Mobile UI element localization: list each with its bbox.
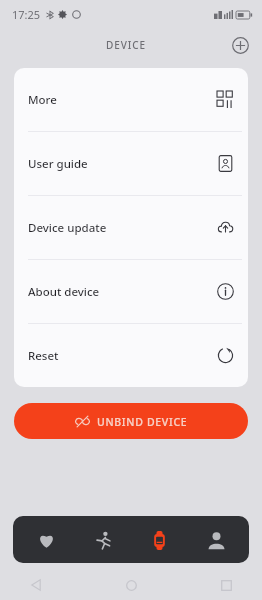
staticText: Reset bbox=[28, 348, 59, 364]
button[interactable]: Health bbox=[23, 517, 69, 563]
button[interactable]: UNBIND DEVICE bbox=[14, 403, 248, 439]
staticText: More bbox=[28, 92, 57, 108]
button[interactable]: About device bbox=[14, 260, 248, 323]
staticText: About device bbox=[28, 284, 100, 300]
button[interactable]: Recents bbox=[212, 571, 240, 599]
staticText: 17:25 bbox=[12, 7, 41, 22]
button[interactable]: Device bbox=[136, 517, 182, 563]
staticText: UNBIND DEVICE bbox=[97, 415, 188, 429]
staticText: Device update bbox=[28, 220, 107, 236]
button[interactable]: Add device bbox=[227, 32, 253, 58]
button[interactable]: Activity bbox=[80, 517, 126, 563]
staticText: User guide bbox=[28, 156, 88, 172]
button[interactable]: More bbox=[14, 68, 248, 131]
button[interactable]: Back bbox=[22, 571, 50, 599]
button[interactable]: Home bbox=[117, 571, 145, 599]
button[interactable]: Device update bbox=[14, 196, 248, 259]
button[interactable]: Profile bbox=[193, 517, 239, 563]
button[interactable]: Reset bbox=[14, 324, 248, 387]
button[interactable]: User guide bbox=[14, 132, 248, 195]
staticText: DEVICE bbox=[106, 38, 146, 52]
